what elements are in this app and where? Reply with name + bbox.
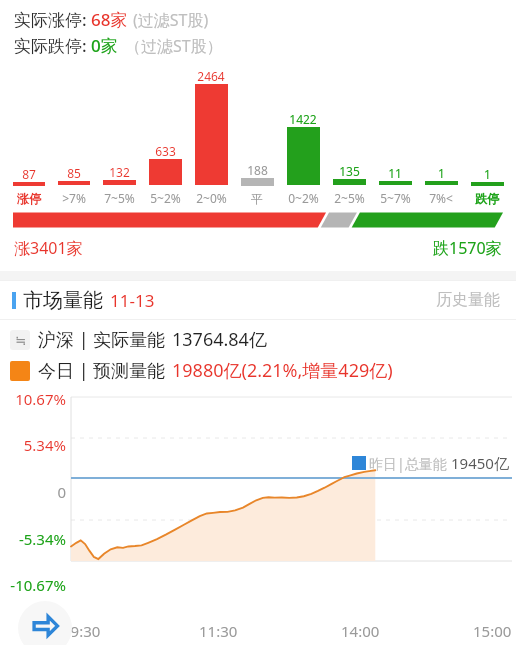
staticText: 68家	[91, 8, 128, 31]
staticText: 87	[22, 166, 36, 182]
staticText: 实际跌停:	[14, 34, 87, 57]
staticText: 10.67%	[15, 389, 66, 409]
staticText: 沪深 | 实际量能	[38, 327, 166, 352]
staticText: 09:30	[62, 621, 101, 641]
staticText: 135	[339, 163, 360, 179]
staticText: 市场量能	[23, 288, 103, 313]
staticText: -10.67%	[10, 575, 66, 595]
staticText: 1	[438, 165, 445, 181]
staticText: 实际涨停:	[14, 8, 87, 31]
staticText: 13764.84亿	[172, 327, 267, 352]
staticText: 5~2%	[150, 190, 181, 206]
staticText: 历史量能	[436, 290, 500, 310]
staticText: 19450亿	[451, 453, 509, 473]
staticText: 7%<	[429, 190, 453, 206]
staticText: 7~5%	[104, 190, 135, 206]
staticText: 15:00	[473, 621, 512, 641]
staticText: 5~7%	[380, 190, 411, 206]
staticText: 19880亿(2.21%,增量429亿)	[172, 358, 393, 383]
staticText: 平	[251, 191, 263, 206]
staticText: 2464	[197, 68, 225, 84]
staticText: 跌1570家	[433, 237, 502, 259]
button[interactable]: 分享	[18, 601, 72, 645]
staticText: 11-13	[110, 289, 155, 312]
staticText: >7%	[62, 190, 86, 206]
staticText: 633	[155, 143, 176, 159]
staticText: 0家	[91, 34, 118, 57]
staticText: 1422	[289, 111, 317, 127]
staticText: 5.34%	[23, 435, 66, 455]
staticText: 跌停	[475, 191, 499, 206]
staticText: （过滤ST股）	[125, 35, 223, 57]
button[interactable]: 历史量能	[432, 286, 504, 314]
staticText: 2~5%	[334, 190, 365, 206]
staticText: 涨3401家	[14, 237, 83, 259]
staticText: -5.34%	[18, 529, 66, 549]
staticText: 昨日|总量能	[369, 454, 447, 473]
staticText: 14:00	[341, 621, 380, 641]
staticText: 85	[67, 165, 81, 181]
staticText: 11	[388, 165, 402, 181]
staticText: 0~2%	[288, 190, 319, 206]
staticText: 0	[57, 482, 66, 502]
staticText: ≒	[15, 333, 26, 348]
staticText: 涨停	[17, 191, 41, 206]
staticText: 2~0%	[196, 190, 227, 206]
staticText: 今日 | 预测量能	[38, 358, 166, 383]
staticText: 1	[484, 166, 491, 182]
staticText: 132	[109, 164, 130, 180]
staticText: 11:30	[199, 621, 238, 641]
staticText: 188	[247, 162, 268, 178]
staticText: (过滤ST股)	[133, 9, 209, 31]
